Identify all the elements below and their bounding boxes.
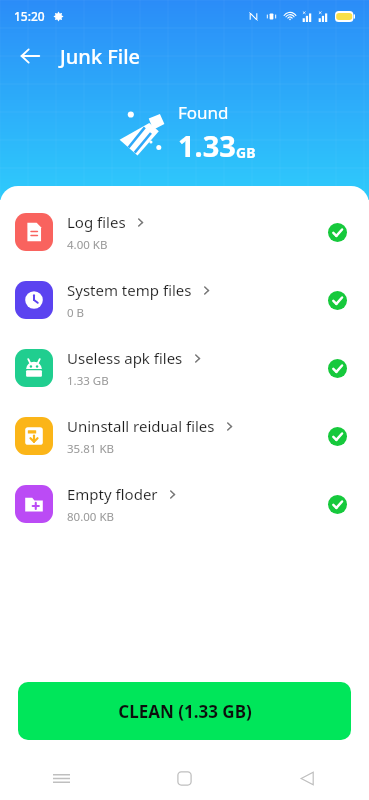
staticText: System temp files bbox=[67, 280, 192, 300]
button[interactable]: Selected bbox=[320, 215, 354, 249]
staticText: Useless apk files bbox=[67, 348, 183, 368]
staticText: 1.33 bbox=[178, 126, 236, 165]
staticText: Junk File bbox=[60, 43, 141, 70]
staticText: 80.00 KB bbox=[67, 509, 114, 525]
staticText: Found bbox=[178, 101, 229, 124]
staticText: 0 B bbox=[67, 305, 85, 321]
staticText: Uninstall reidual files bbox=[67, 416, 215, 436]
button[interactable]: Selected bbox=[320, 283, 354, 317]
button[interactable]: Recent apps bbox=[0, 756, 123, 800]
button[interactable]: Back bbox=[8, 34, 52, 78]
staticText: CLEAN (1.33 GB) bbox=[118, 700, 252, 723]
staticText: Empty floder bbox=[67, 484, 158, 504]
staticText: 35.81 KB bbox=[67, 441, 114, 457]
button[interactable]: Useless apk files bbox=[0, 334, 369, 402]
button[interactable]: Log files bbox=[0, 198, 369, 266]
staticText: 4.00 KB bbox=[67, 237, 108, 253]
button[interactable]: Selected bbox=[320, 351, 354, 385]
staticText: 15:20 bbox=[14, 8, 45, 24]
button[interactable]: Selected bbox=[320, 487, 354, 521]
staticText: Log files bbox=[67, 212, 126, 232]
button[interactable]: CLEAN (1.33 GB) bbox=[18, 682, 351, 740]
button[interactable]: Selected bbox=[320, 419, 354, 453]
button[interactable]: Empty floder bbox=[0, 470, 369, 538]
button[interactable]: Uninstall reidual files bbox=[0, 402, 369, 470]
button[interactable]: Home bbox=[123, 756, 246, 800]
staticText: 1.33 GB bbox=[67, 373, 109, 389]
staticText: GB bbox=[236, 143, 256, 162]
button[interactable]: Back bbox=[246, 756, 369, 800]
button[interactable]: System temp files bbox=[0, 266, 369, 334]
